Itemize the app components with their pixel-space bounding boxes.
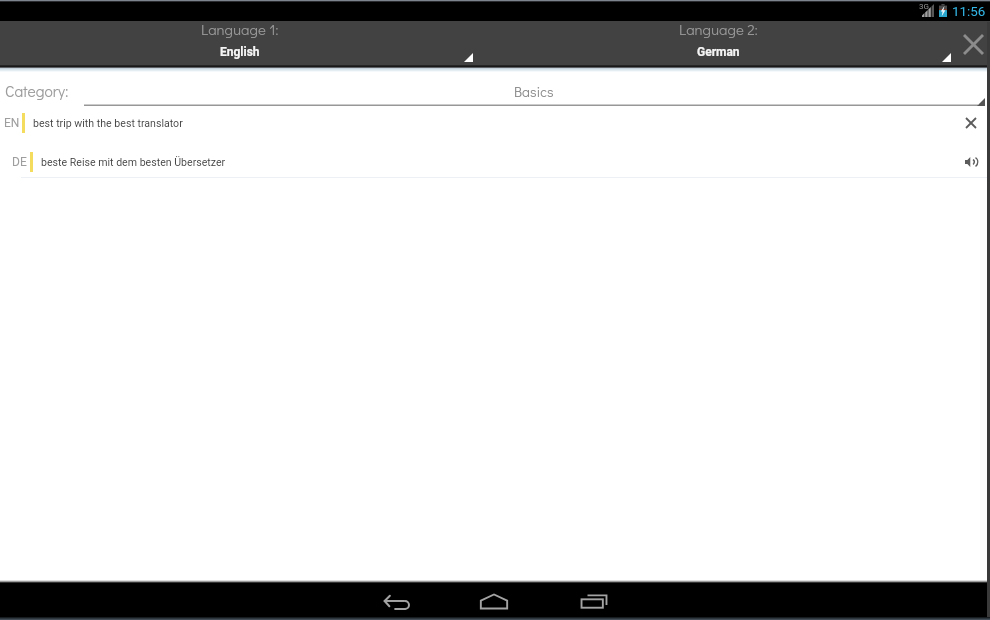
staticText: Language 2:	[679, 19, 758, 39]
staticText: best trip with the best translator	[33, 117, 183, 129]
staticText: beste Reise mit dem besten Übersetzer	[41, 156, 226, 168]
staticText: 3G	[919, 2, 929, 11]
button[interactable]: Language 1:	[0, 21, 479, 65]
button[interactable]: Recents	[554, 581, 634, 620]
staticText: English	[220, 45, 260, 59]
staticText: Category:	[5, 81, 69, 101]
button[interactable]: Basics	[84, 81, 984, 109]
button[interactable]: Home	[454, 581, 534, 620]
staticText: Language 1:	[201, 19, 279, 39]
button[interactable]: Language 2:	[479, 21, 957, 65]
button[interactable]: Close	[957, 21, 990, 65]
button[interactable]: EN	[0, 113, 990, 133]
staticText: DE	[12, 155, 27, 169]
staticText: 11:56	[952, 4, 986, 20]
staticText: Basics	[514, 82, 554, 100]
button[interactable]: DE	[0, 152, 990, 172]
button[interactable]: Clear	[956, 113, 986, 133]
staticText: EN	[4, 116, 20, 130]
button[interactable]: Back	[356, 581, 436, 620]
staticText: German	[697, 45, 740, 59]
button[interactable]: Speak	[956, 152, 986, 172]
